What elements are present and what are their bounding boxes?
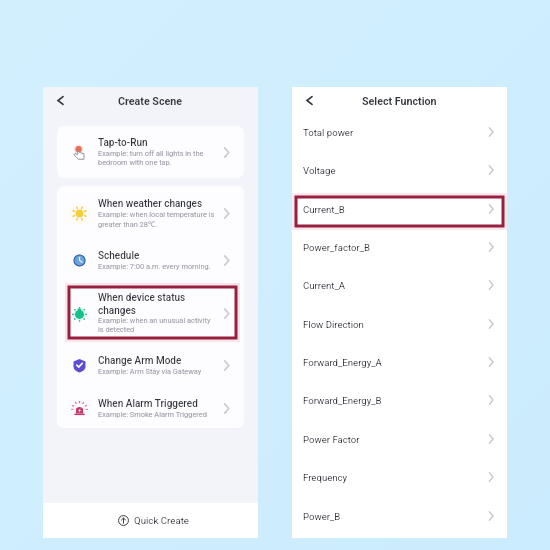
button[interactable]: Change Arm Mode bbox=[57, 344, 244, 386]
button[interactable]: Back bbox=[48, 91, 72, 115]
staticText: Voltage bbox=[303, 165, 486, 176]
button[interactable]: Schedule bbox=[57, 239, 244, 281]
button[interactable]: Frequency bbox=[292, 458, 507, 496]
button[interactable]: Quick Create bbox=[43, 503, 258, 538]
staticText: Select Function bbox=[362, 95, 437, 108]
staticText: Example: 7:00 a.m. every morning. bbox=[98, 262, 211, 271]
button[interactable]: When device status changes bbox=[57, 285, 244, 341]
staticText: bedroom with one tap. bbox=[98, 158, 172, 167]
staticText: Flow Direction bbox=[303, 319, 486, 330]
staticText: Example: turn off all lights in the bbox=[98, 149, 204, 158]
staticText: Total power bbox=[303, 127, 486, 138]
staticText: Frequency bbox=[303, 472, 486, 483]
staticText: Forward_Energy_B bbox=[303, 395, 486, 406]
staticText: Power_factor_B bbox=[303, 242, 486, 253]
button[interactable]: Total power bbox=[292, 113, 507, 151]
staticText: Current_B bbox=[303, 204, 486, 215]
button[interactable]: Power_factor_B bbox=[292, 228, 507, 266]
staticText: Forward_Energy_A bbox=[303, 357, 486, 368]
button[interactable]: Forward_Energy_B bbox=[292, 381, 507, 419]
staticText: Power Factor bbox=[303, 434, 486, 445]
button[interactable]: Current_B bbox=[292, 190, 507, 228]
staticText: Schedule bbox=[98, 250, 140, 262]
button[interactable]: Voltage bbox=[292, 151, 507, 189]
button[interactable]: Flow Direction bbox=[292, 305, 507, 343]
staticText: Power_B bbox=[303, 511, 486, 522]
button[interactable]: Current_A bbox=[292, 266, 507, 304]
staticText: Quick Create bbox=[134, 515, 189, 526]
staticText: Example: when local temperature is bbox=[98, 210, 215, 219]
staticText: Example: when an unusual activity bbox=[98, 316, 211, 325]
staticText: When Alarm Triggered bbox=[98, 398, 198, 410]
button[interactable]: Power_B bbox=[292, 497, 507, 535]
staticText: Tap-to-Run bbox=[98, 137, 148, 149]
staticText: Create Scene bbox=[118, 95, 183, 108]
staticText: When weather changes bbox=[98, 198, 203, 210]
staticText: Current_A bbox=[303, 280, 486, 291]
button[interactable]: Power Factor bbox=[292, 420, 507, 458]
staticText: Example: Arm Stay via Gateway bbox=[98, 367, 202, 376]
button[interactable]: Forward_Energy_A bbox=[292, 343, 507, 381]
staticText: Example: Smoke Alarm Triggered bbox=[98, 410, 207, 419]
staticText: When device status changes bbox=[98, 292, 186, 316]
button[interactable]: When weather changes bbox=[57, 188, 244, 238]
button[interactable]: Back bbox=[297, 91, 321, 115]
button[interactable]: When Alarm Triggered bbox=[57, 388, 244, 428]
staticText: greater than 28℃. bbox=[98, 219, 158, 229]
button[interactable]: Tap-to-Run bbox=[57, 126, 244, 178]
staticText: is detected bbox=[98, 325, 135, 334]
staticText: Change Arm Mode bbox=[98, 355, 182, 367]
